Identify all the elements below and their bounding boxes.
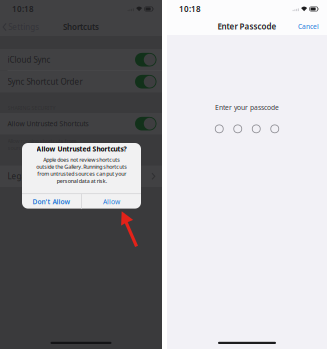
button[interactable]: Don't Allow <box>22 194 81 209</box>
staticText: iCloud Sync <box>7 54 50 65</box>
staticText: Allow <box>103 197 120 206</box>
button[interactable]: Settings <box>0 18 39 36</box>
staticText: Allow running shortcuts from sources out… <box>7 137 76 152</box>
staticText: Legal <box>7 171 27 181</box>
button[interactable]: Cancel <box>298 18 327 35</box>
button[interactable]: Legal <box>0 165 162 187</box>
staticText: Sync Shortcut Order <box>7 76 82 87</box>
staticText: Allow Untrusted Shortcuts? <box>36 145 126 153</box>
button[interactable]: iCloud Sync <box>0 49 162 70</box>
staticText: Enter your passcode <box>215 103 279 112</box>
staticText: Allow Untrusted Shortcuts <box>7 119 88 128</box>
staticText: Cancel <box>298 22 319 31</box>
staticText: 10:18 <box>179 4 201 14</box>
staticText: Settings <box>8 22 39 32</box>
staticText: Shortcuts <box>63 22 99 32</box>
staticText: 10:18 <box>12 4 34 14</box>
staticText: Apple does not review shortcuts outside … <box>36 156 127 184</box>
staticText: Enter Passcode <box>217 21 276 32</box>
button[interactable]: Allow Untrusted Shortcuts <box>0 113 162 134</box>
button[interactable]: Allow <box>82 194 141 209</box>
staticText: Don't Allow <box>33 197 71 206</box>
button[interactable]: Sync Shortcut Order <box>0 71 162 92</box>
